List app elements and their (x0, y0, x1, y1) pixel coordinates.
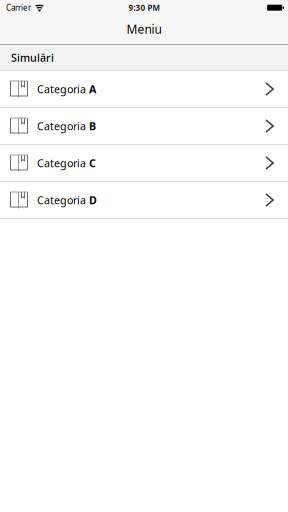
staticText: Categoria (37, 156, 89, 170)
staticText: 9:30 PM (128, 2, 159, 13)
staticText: C (89, 156, 96, 170)
button[interactable]: Categoria (0, 71, 288, 108)
staticText: B (89, 119, 96, 133)
staticText: D (89, 193, 97, 207)
button[interactable]: Categoria (0, 182, 288, 219)
staticText: Simulări (11, 50, 54, 65)
staticText: Meniu (126, 21, 161, 37)
button[interactable]: Categoria (0, 145, 288, 182)
button[interactable]: Categoria (0, 108, 288, 145)
staticText: Categoria (37, 82, 89, 96)
staticText: Categoria (37, 193, 89, 207)
staticText: A (89, 82, 96, 96)
staticText: Carrier (6, 2, 31, 13)
staticText: Categoria (37, 119, 89, 133)
